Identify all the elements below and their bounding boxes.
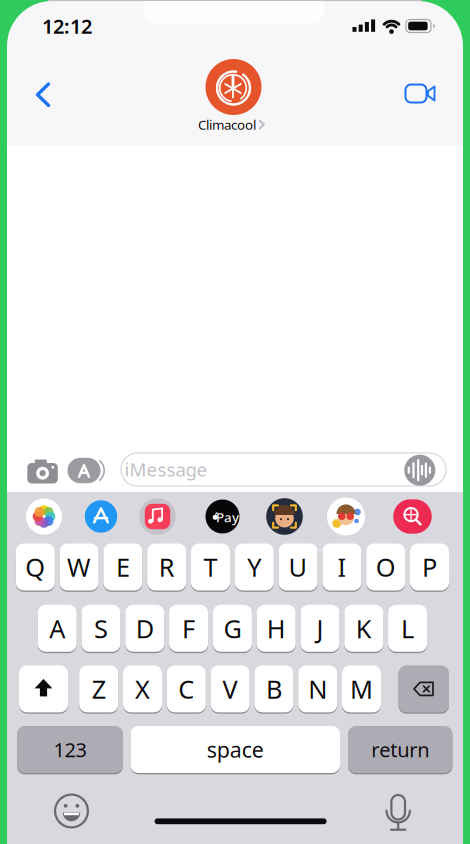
button[interactable]: Back: [27, 76, 59, 112]
button[interactable]: Shift: [19, 664, 68, 713]
staticText: iMessage: [124, 457, 207, 482]
button[interactable]: Climacool contact: [203, 57, 263, 117]
button[interactable]: U: [279, 542, 318, 591]
button[interactable]: B: [254, 664, 293, 713]
staticText: N: [308, 672, 327, 706]
button[interactable]: return: [348, 725, 452, 774]
button[interactable]: Z: [79, 664, 118, 713]
staticText: space: [207, 735, 264, 764]
staticText: U: [289, 550, 308, 584]
button[interactable]: Y: [235, 542, 274, 591]
button[interactable]: Dictation: [385, 794, 413, 831]
button[interactable]: Search images: [393, 499, 432, 534]
button[interactable]: S: [81, 604, 120, 653]
button[interactable]: Memoji sticker: [327, 497, 365, 535]
button[interactable]: A: [38, 604, 77, 653]
button[interactable]: Camera: [27, 459, 59, 484]
staticText: Y: [247, 550, 261, 584]
staticText: W: [67, 550, 91, 584]
staticText: T: [203, 550, 217, 584]
staticText: C: [178, 672, 194, 706]
button[interactable]: space: [130, 725, 340, 774]
button[interactable]: R: [147, 542, 186, 591]
staticText: H: [267, 611, 286, 645]
staticText: S: [94, 611, 108, 645]
button[interactable]: K: [344, 604, 383, 653]
button[interactable]: J: [300, 604, 339, 653]
button[interactable]: V: [211, 664, 250, 713]
staticText: F: [182, 611, 195, 645]
button[interactable]: Music: [139, 498, 176, 535]
staticText: 12:12: [42, 13, 92, 39]
staticText: G: [223, 611, 241, 645]
button[interactable]: Delete: [398, 664, 449, 713]
staticText: J: [316, 611, 323, 645]
button[interactable]: W: [60, 542, 99, 591]
staticText: E: [116, 550, 130, 584]
staticText: 123: [53, 736, 86, 763]
staticText: Q: [25, 550, 45, 584]
staticText: V: [223, 672, 238, 706]
button[interactable]: M: [342, 664, 381, 713]
button[interactable]: T: [191, 542, 230, 591]
button[interactable]: D: [125, 604, 164, 653]
button[interactable]: FaceTime video: [404, 81, 436, 105]
staticText: D: [136, 611, 154, 645]
staticText: Pay: [216, 508, 239, 526]
button[interactable]: L: [388, 604, 427, 653]
staticText: B: [266, 672, 282, 706]
button[interactable]: H: [257, 604, 296, 653]
button[interactable]: iMessage apps: [67, 458, 107, 484]
staticText: K: [356, 611, 372, 645]
button[interactable]: C: [167, 664, 206, 713]
staticText: M: [350, 672, 373, 706]
button[interactable]: I: [322, 542, 361, 591]
button[interactable]: O: [366, 542, 405, 591]
button[interactable]: P: [410, 542, 449, 591]
button[interactable]: App Store: [84, 499, 118, 533]
button[interactable]: G: [213, 604, 252, 653]
button[interactable]: Apple Pay: [205, 499, 240, 534]
button[interactable]: E: [103, 542, 142, 591]
staticText: P: [422, 550, 437, 584]
button[interactable]: Memoji Stickers: [266, 498, 303, 535]
button[interactable]: N: [298, 664, 337, 713]
staticText: I: [337, 550, 346, 584]
button[interactable]: Photos: [26, 498, 62, 534]
button[interactable]: Dictate: [404, 455, 435, 486]
staticText: Z: [92, 672, 106, 706]
staticText: return: [371, 736, 429, 763]
button[interactable]: Q: [16, 542, 55, 591]
button[interactable]: F: [169, 604, 208, 653]
staticText: Climacool: [198, 116, 256, 133]
staticText: R: [159, 550, 175, 584]
staticText: O: [376, 550, 396, 584]
staticText: L: [401, 611, 414, 645]
button[interactable]: X: [123, 664, 162, 713]
staticText: X: [135, 672, 150, 706]
button[interactable]: iMessage text field: [121, 453, 446, 486]
staticText: A: [49, 611, 65, 645]
button[interactable]: Emoji: [54, 793, 89, 828]
button[interactable]: 123: [17, 725, 123, 774]
